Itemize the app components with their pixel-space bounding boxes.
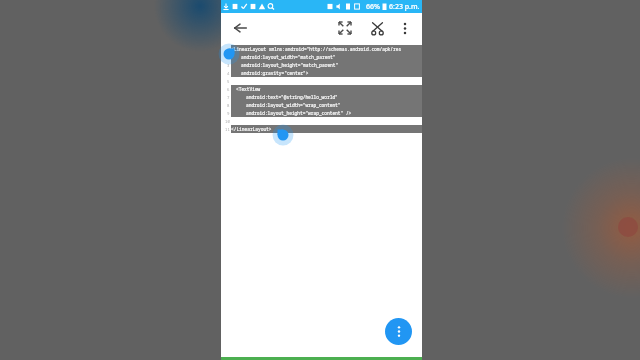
button[interactable]: Back [227,15,253,41]
button[interactable]: More options [392,15,418,41]
staticText: 6:23 p.m. [389,2,420,12]
staticText: 2 [227,55,230,60]
staticText: 7 [227,95,230,100]
staticText: android:text="@string/hello_world" [246,94,338,100]
staticText: 10 [225,119,230,124]
staticText: 66% [366,2,380,12]
staticText: <LinearLayout xmlns:android="http://sche… [231,46,402,52]
staticText: 8 [227,103,230,108]
staticText: android:layout_width="wrap_content" [246,102,341,108]
staticText: android:layout_height="wrap_content" /> [246,110,352,116]
staticText: 11 [225,127,230,132]
staticText: 5 [227,79,230,84]
button[interactable]: Cut [364,15,390,41]
staticText: </LinearLayout> [231,126,272,132]
staticText: android:layout_height="match_parent" [241,62,339,68]
button[interactable]: More actions [385,318,412,345]
staticText: <TextView [236,86,261,92]
staticText: 3 [227,63,230,68]
staticText: 4 [227,71,230,76]
staticText: android:gravity="center"> [241,70,309,76]
button[interactable]: Fullscreen [332,15,358,41]
staticText: 9 [227,111,230,116]
staticText: 6 [227,87,230,92]
staticText: 1 [227,47,230,52]
staticText: android:layout_width="match_parent" [241,54,336,60]
